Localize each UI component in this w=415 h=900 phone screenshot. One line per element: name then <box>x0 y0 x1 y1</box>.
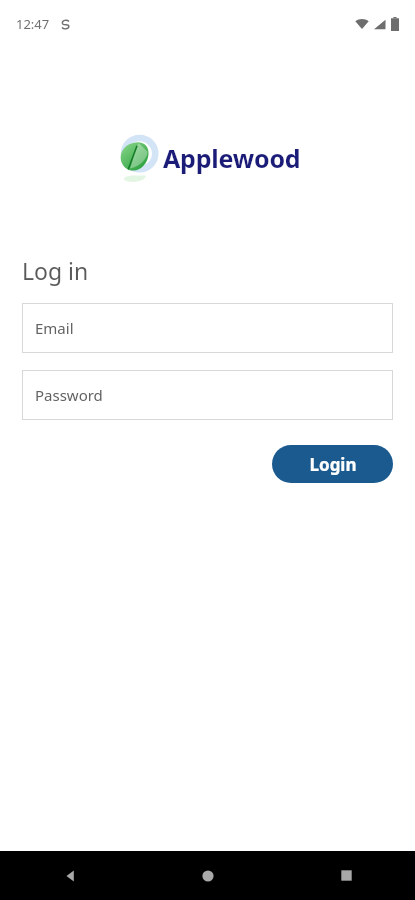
button[interactable]: Home <box>139 851 277 900</box>
staticText: Email <box>35 318 74 338</box>
staticText: Log in <box>22 255 89 286</box>
button[interactable]: Back <box>0 851 139 900</box>
staticText: Login <box>309 453 357 476</box>
staticText: Password <box>35 385 103 405</box>
button[interactable]: Login <box>272 445 393 483</box>
button[interactable]: Recent apps <box>277 851 415 900</box>
button[interactable]: Password <box>22 370 393 420</box>
staticText: Applewood <box>163 141 301 175</box>
button[interactable]: Email <box>22 303 393 353</box>
staticText: 12:47 <box>16 15 50 33</box>
